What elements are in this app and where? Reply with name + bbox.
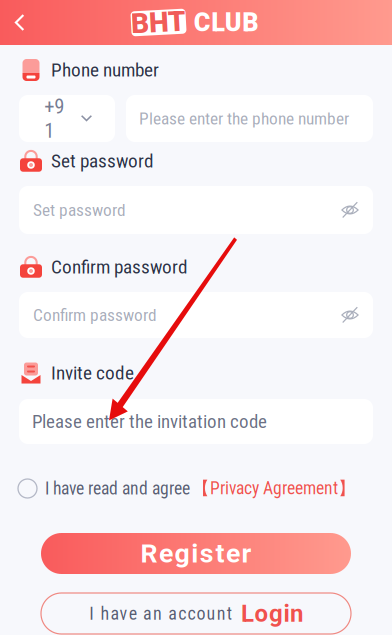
staticText: Set password [51,150,154,172]
staticText: Invite code [51,362,134,384]
staticText: 【Privacy Agreement】 [192,477,356,500]
button[interactable]: +91 [19,95,115,142]
staticText: CLUB [194,8,258,37]
staticText: Confirm password [33,305,157,325]
staticText: Please enter the invitation code [32,410,267,433]
staticText: I have an account [89,603,232,624]
staticText: Confirm password [51,256,188,278]
button[interactable]: Please enter the phone number [126,95,373,142]
staticText: Login [241,599,303,627]
staticText: BHT [131,6,186,39]
button[interactable]: I have an account [0,593,392,634]
button[interactable]: Please enter the invitation code [0,399,392,444]
button[interactable]: Register [0,533,392,574]
staticText: Register [140,538,252,569]
staticText: Set password [33,200,126,220]
staticText: +91 [44,94,64,143]
staticText: Phone number [51,59,159,81]
button[interactable]: I have read and agree [0,479,392,498]
staticText: I have read and agree [45,478,190,499]
button[interactable]: Back [0,0,38,45]
staticText: Please enter the phone number [139,108,349,129]
button[interactable]: Confirm password [0,292,392,338]
button[interactable]: Set password [0,186,392,234]
